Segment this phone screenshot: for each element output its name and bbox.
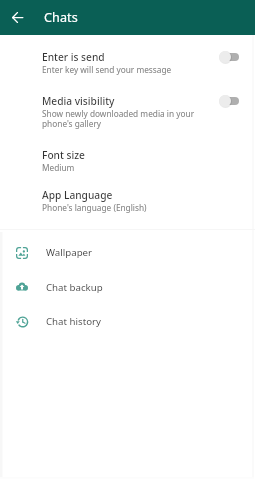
- staticText: Medium: [42, 162, 75, 173]
- staticText: Chat backup: [46, 281, 103, 294]
- button[interactable]: Enter is send: [0, 47, 255, 81]
- staticText: Enter key will send your message: [42, 64, 172, 75]
- button[interactable]: Chat backup: [0, 270, 255, 305]
- staticText: Wallpaper: [46, 246, 93, 259]
- staticText: Chats: [44, 9, 78, 26]
- button[interactable]: Font size: [0, 145, 255, 179]
- button[interactable]: App Language: [0, 185, 255, 219]
- button[interactable]: Media visibility: [0, 91, 255, 135]
- button[interactable]: Wallpaper: [0, 235, 255, 270]
- staticText: Chat history: [46, 315, 101, 328]
- staticText: Phone's language (English): [42, 202, 147, 213]
- staticText: App Language: [42, 188, 113, 202]
- button[interactable]: Chat history: [0, 304, 255, 339]
- staticText: Font size: [42, 148, 85, 162]
- staticText: Show newly downloaded media in your phon…: [42, 108, 195, 130]
- staticText: Enter is send: [42, 50, 105, 64]
- staticText: Media visibility: [42, 94, 115, 108]
- button[interactable]: Back: [4, 4, 31, 31]
